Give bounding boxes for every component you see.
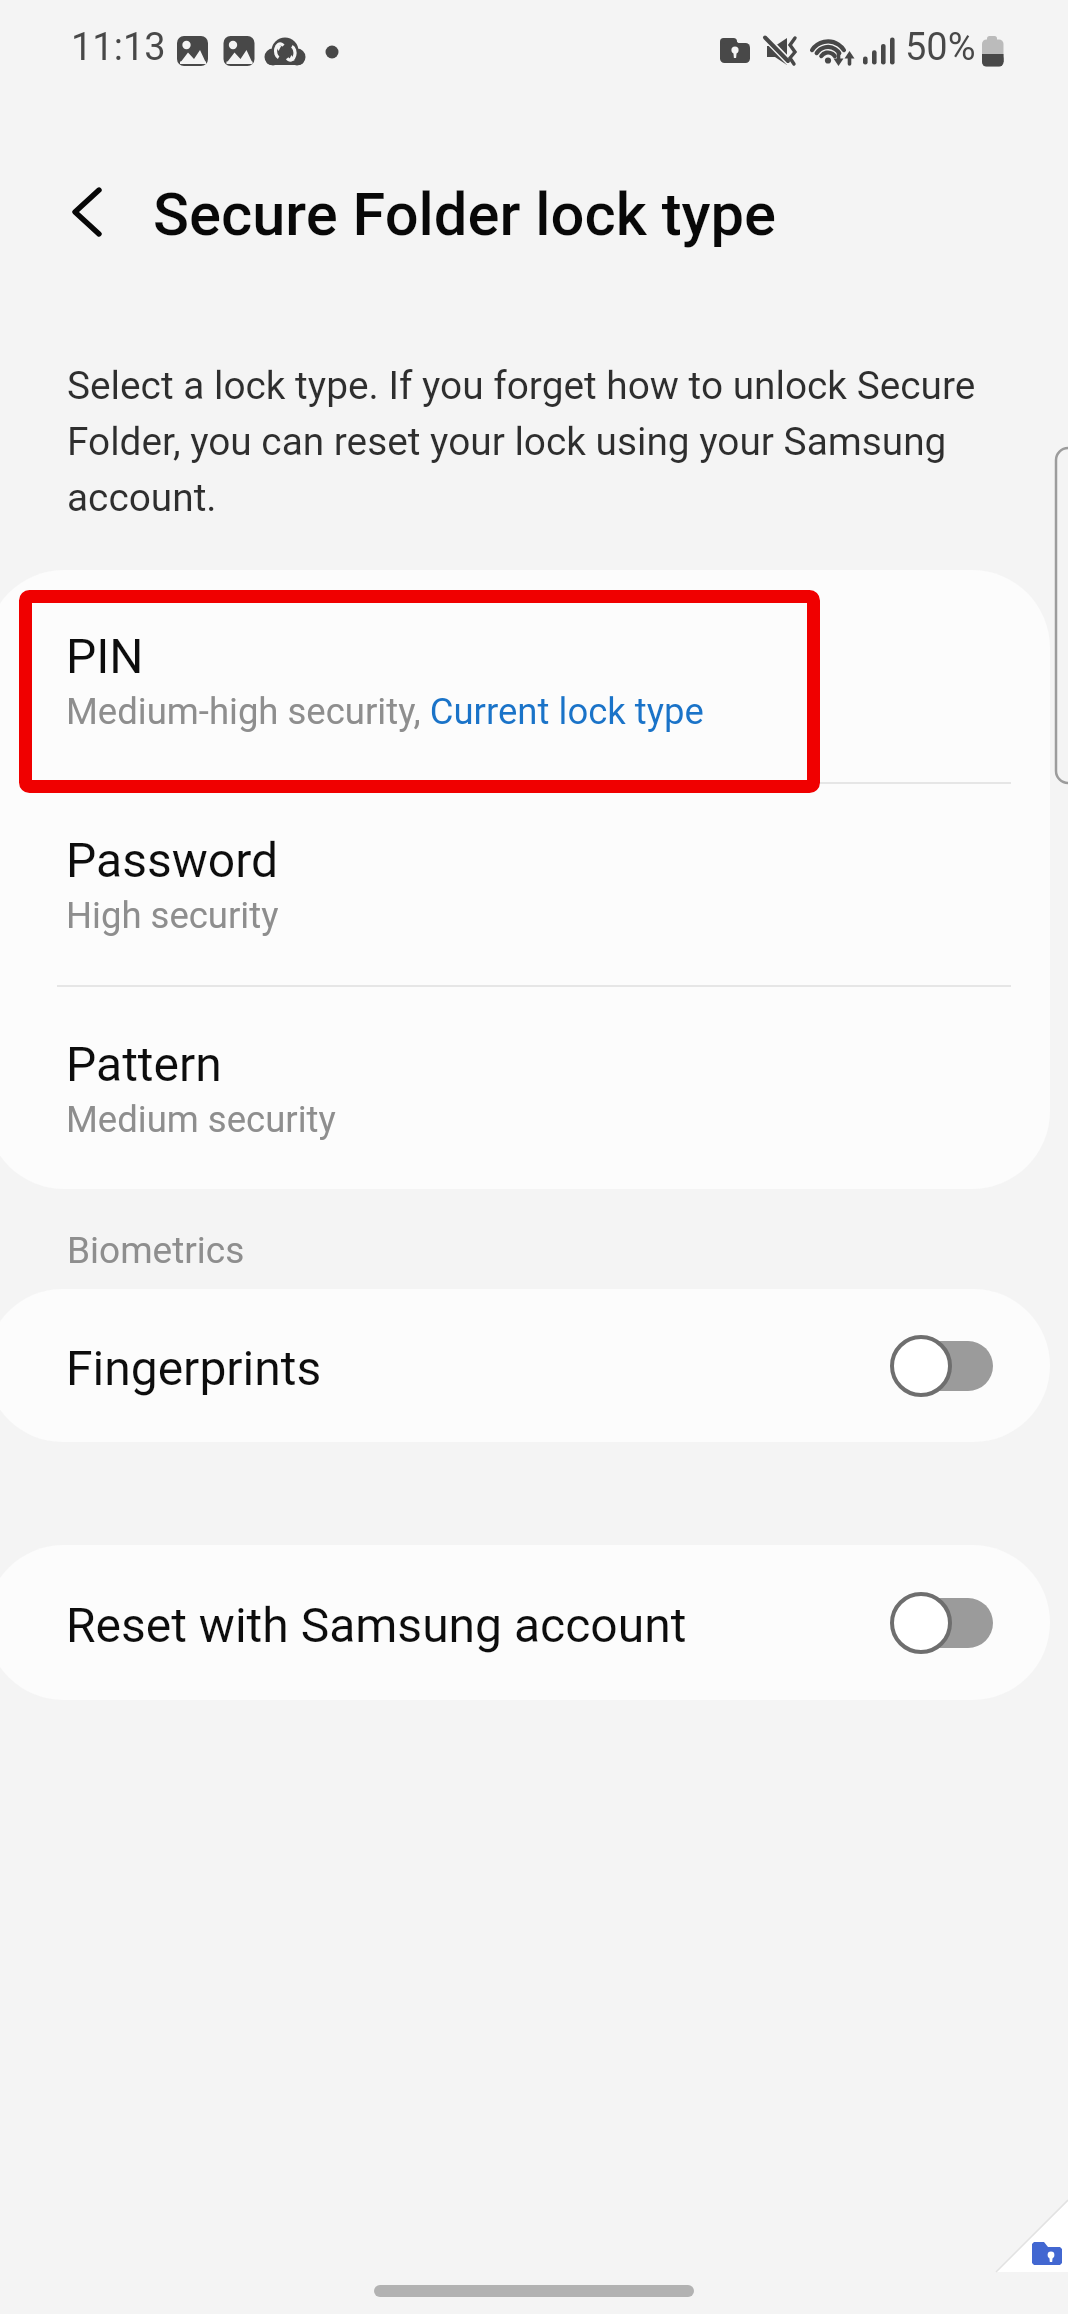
staticText: Select a lock type. If you forget how to… (67, 363, 997, 521)
staticText: PIN (66, 628, 144, 684)
button[interactable]: PIN (0, 579, 1050, 782)
staticText: Biometrics (67, 1229, 245, 1272)
button[interactable]: Password (0, 784, 1050, 985)
button[interactable]: Fingerprints (0, 1289, 1050, 1442)
staticText: 50% (905, 25, 976, 70)
button[interactable]: Back (42, 168, 130, 256)
staticText: Pattern (66, 1036, 222, 1092)
staticText: Reset with Samsung account (66, 1597, 687, 1653)
staticText: Fingerprints (66, 1340, 322, 1396)
button[interactable]: Pattern (0, 987, 1050, 1189)
button[interactable]: Reset with Samsung account (0, 1545, 1050, 1700)
staticText: Medium-high security, Current lock type (66, 690, 704, 733)
staticText: High security (66, 894, 279, 937)
staticText: Password (66, 832, 279, 888)
staticText: Secure Folder lock type (153, 180, 777, 250)
staticText: Medium security (66, 1098, 336, 1141)
staticText: 11:13 (71, 25, 166, 70)
